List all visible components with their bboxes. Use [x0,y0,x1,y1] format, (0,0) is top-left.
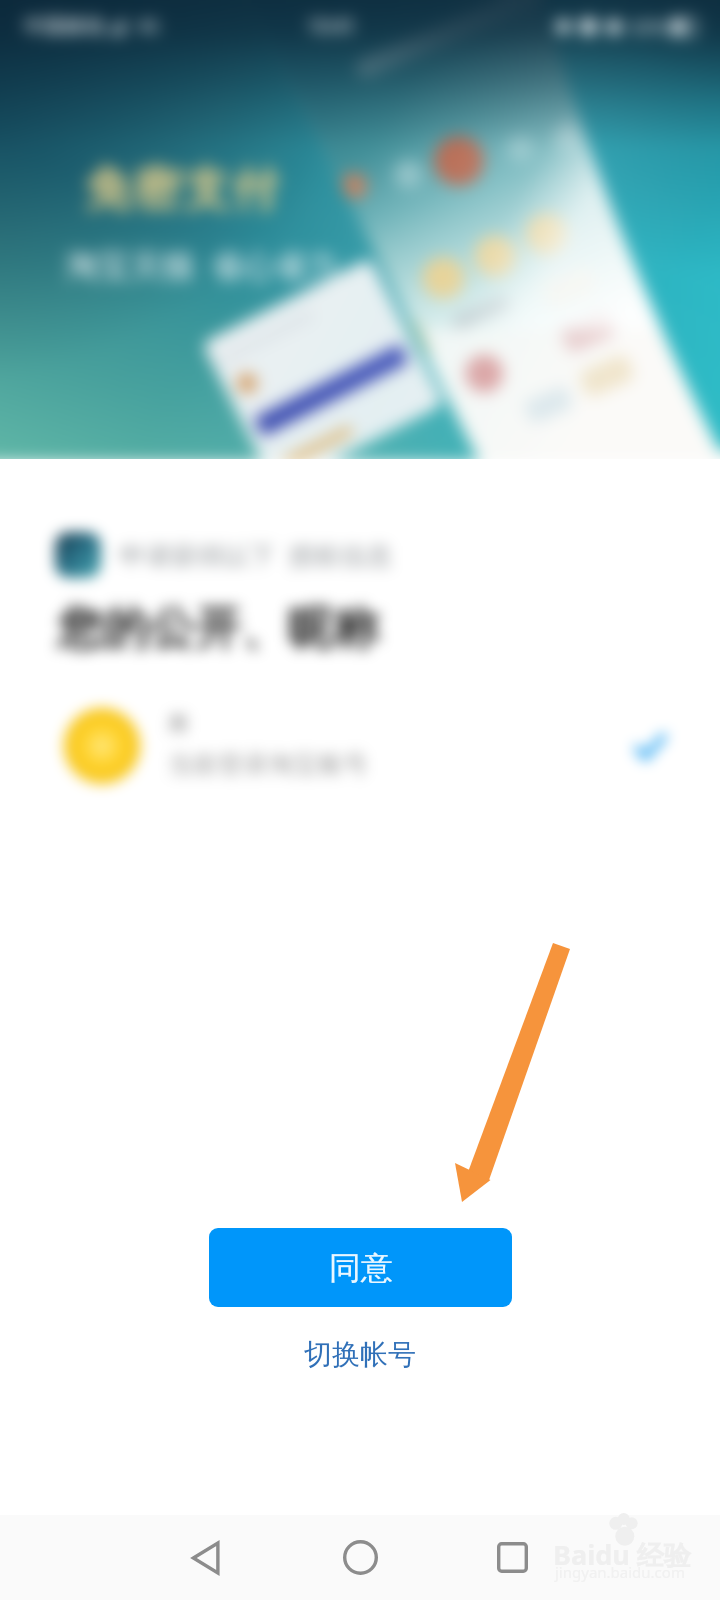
staticText: 您的公开、昵称 [57,600,379,658]
staticText: 用 [168,712,188,737]
button[interactable]: 同意 [209,1228,512,1307]
staticText: Baidu 经验 [553,1536,691,1573]
staticText: 62% [631,15,665,38]
button[interactable]: Recent apps [477,1515,547,1600]
button[interactable]: Back [172,1515,242,1600]
staticText: 中国移动 [24,14,104,39]
staticText: 当前登录淘宝账号 [168,749,368,780]
staticText: 淘宝天猫 省心省力 [66,243,339,287]
staticText: 4G [138,15,159,37]
staticText: 申请获得以下 授权信息 [119,537,393,573]
staticText: jingyan.baidu.com [555,1562,685,1582]
staticText: 切换帐号 [304,1337,416,1372]
button[interactable]: Home [325,1515,395,1600]
staticText: 同意 [329,1248,393,1288]
button[interactable]: 切换帐号 [280,1330,440,1378]
staticText: 免密支付 [84,160,280,219]
staticText: 10:41 [307,13,356,39]
